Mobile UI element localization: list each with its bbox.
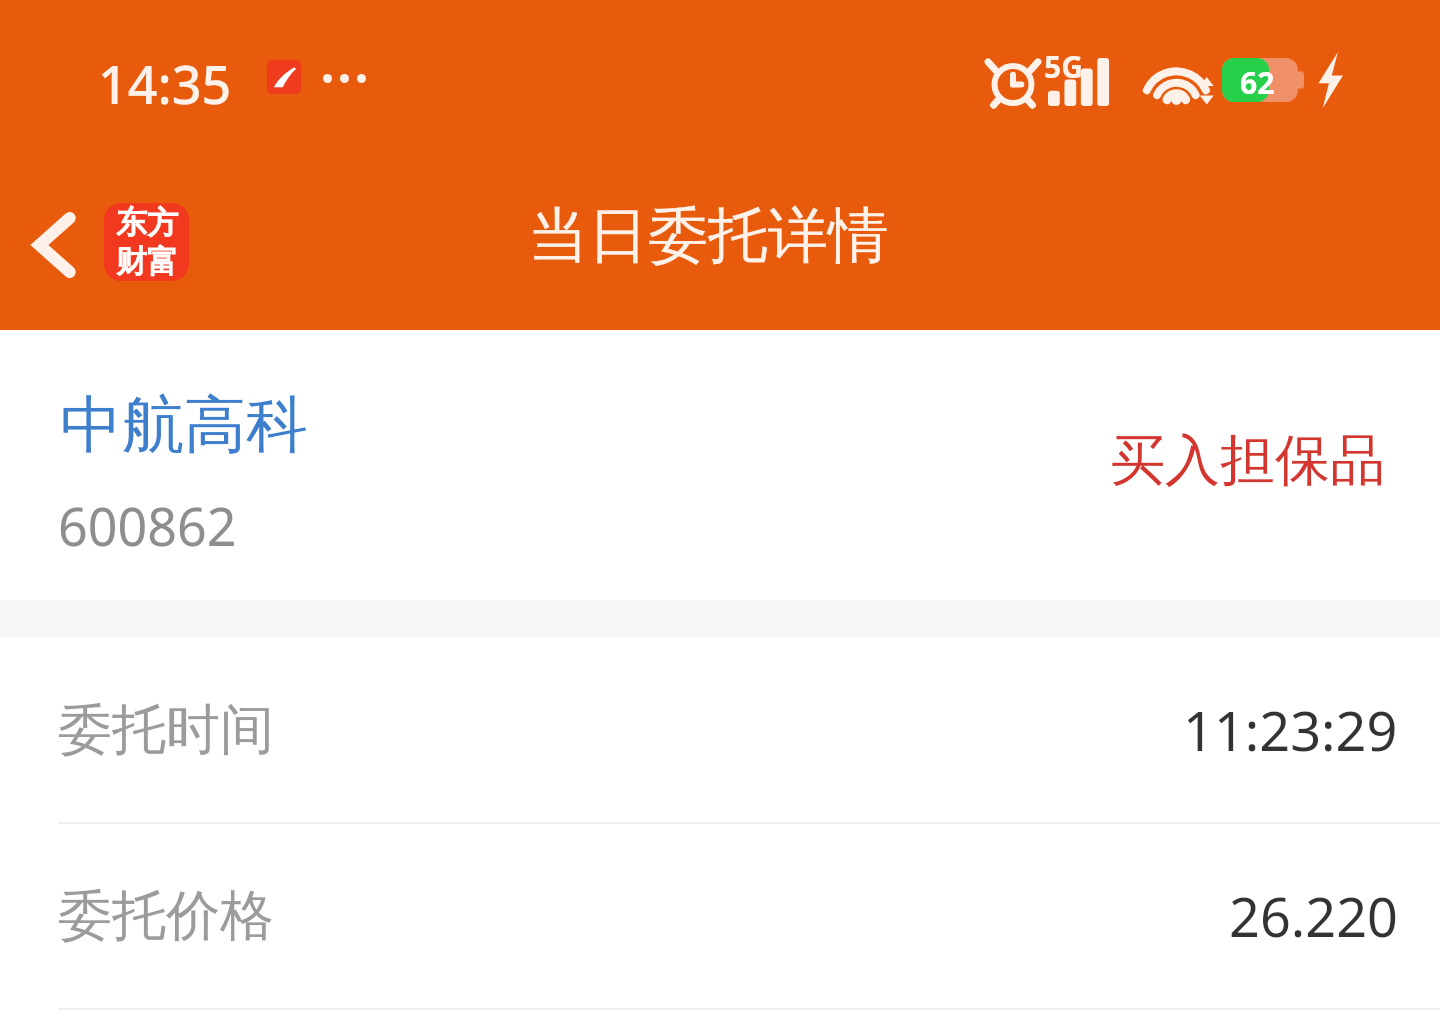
staticText: 委托时间 bbox=[58, 696, 274, 764]
staticText: 11:23:29 bbox=[1183, 693, 1398, 767]
staticText: 62 bbox=[1240, 62, 1275, 103]
staticText: 当日委托详情 bbox=[0, 198, 1416, 274]
staticText: 5G bbox=[1044, 46, 1083, 87]
button[interactable]: Back bbox=[6, 196, 104, 294]
button[interactable]: 中航高科 bbox=[0, 330, 1440, 600]
staticText: 中航高科 bbox=[60, 386, 308, 464]
button[interactable]: 委托价格 bbox=[0, 824, 1440, 1008]
staticText: 26.220 bbox=[1229, 879, 1398, 953]
staticText: 600862 bbox=[58, 490, 237, 561]
staticText: 东方 bbox=[116, 203, 178, 242]
button[interactable]: 东方财富 bbox=[104, 203, 189, 281]
staticText: 委托价格 bbox=[58, 882, 274, 950]
staticText: 财富 bbox=[116, 242, 178, 281]
button[interactable]: 委托时间 bbox=[0, 638, 1440, 822]
staticText: 买入担保品 bbox=[0, 426, 1385, 495]
staticText: 14:35 bbox=[98, 48, 232, 119]
